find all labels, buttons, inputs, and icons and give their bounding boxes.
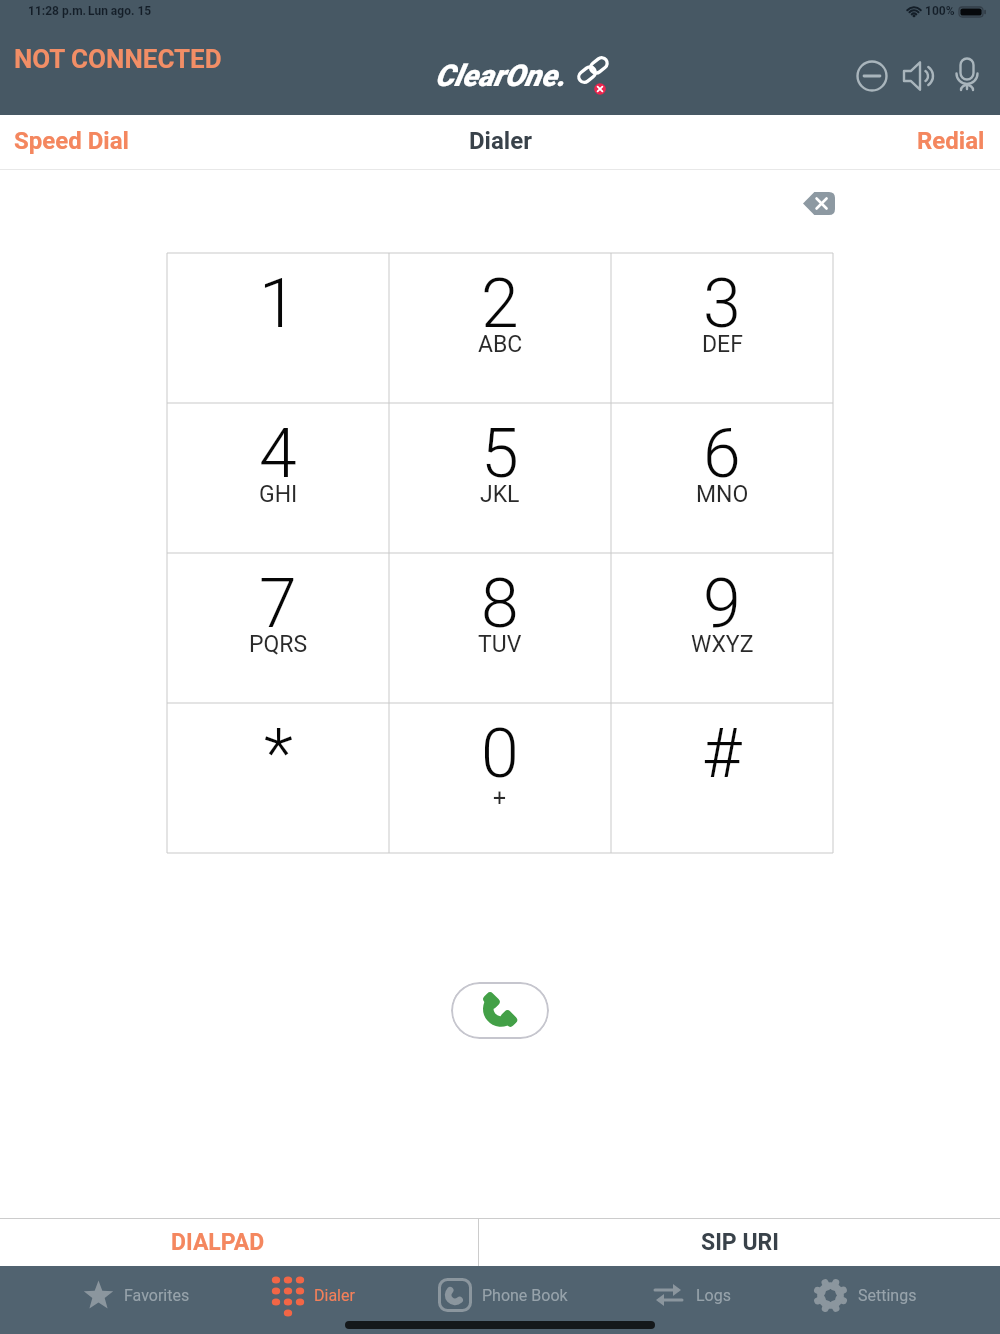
- button[interactable]: 5: [389, 403, 611, 553]
- button[interactable]: [451, 982, 549, 1039]
- staticText: Settings: [858, 1286, 917, 1305]
- button[interactable]: 2: [389, 253, 611, 403]
- button[interactable]: 4: [167, 403, 389, 553]
- button[interactable]: Favorites: [83, 1280, 190, 1310]
- button[interactable]: Phone Book: [438, 1278, 568, 1312]
- button[interactable]: 7: [167, 553, 389, 703]
- staticText: #: [702, 714, 742, 794]
- button[interactable]: Logs: [651, 1281, 731, 1309]
- staticText: ClearOne.: [435, 58, 566, 93]
- staticText: Redial: [917, 127, 985, 155]
- staticText: 100%: [925, 4, 955, 18]
- staticText: TUV: [478, 631, 522, 658]
- staticText: 7: [259, 564, 297, 644]
- button[interactable]: [576, 56, 616, 98]
- staticText: 5: [481, 414, 519, 494]
- button[interactable]: 6: [611, 403, 833, 553]
- staticText: Dialer: [314, 1286, 355, 1305]
- staticText: GHI: [259, 481, 298, 508]
- button[interactable]: Settings: [813, 1278, 917, 1313]
- button[interactable]: Redial: [917, 127, 985, 155]
- button[interactable]: [903, 58, 939, 94]
- staticText: 0: [481, 714, 519, 794]
- staticText: DEF: [702, 331, 743, 358]
- button[interactable]: *: [167, 703, 389, 853]
- button[interactable]: [803, 190, 835, 217]
- staticText: Logs: [696, 1286, 731, 1305]
- staticText: Dialer: [469, 127, 532, 155]
- staticText: 9: [703, 564, 741, 644]
- staticText: 2: [481, 264, 519, 344]
- staticText: Lun ago. 15: [88, 4, 152, 18]
- button[interactable]: [856, 60, 888, 92]
- staticText: *: [264, 714, 293, 794]
- button[interactable]: SIP URI: [479, 1219, 1000, 1266]
- button[interactable]: 9: [611, 553, 833, 703]
- staticText: 8: [481, 564, 519, 644]
- staticText: 6: [703, 414, 741, 494]
- staticText: MNO: [696, 481, 749, 508]
- button[interactable]: DIALPAD: [0, 1219, 478, 1266]
- button[interactable]: Dialer: [272, 1274, 355, 1316]
- button[interactable]: [949, 57, 985, 95]
- button[interactable]: 0: [389, 703, 611, 853]
- staticText: 1: [259, 264, 297, 344]
- button[interactable]: Speed Dial: [14, 127, 129, 155]
- staticText: Phone Book: [482, 1286, 568, 1305]
- staticText: ABC: [478, 331, 523, 358]
- staticText: Favorites: [124, 1286, 190, 1305]
- staticText: 4: [259, 414, 297, 494]
- staticText: 11:28 p.m.: [28, 4, 87, 18]
- staticText: 3: [703, 264, 741, 344]
- staticText: JKL: [480, 481, 520, 508]
- staticText: WXYZ: [691, 631, 754, 658]
- button[interactable]: 1: [167, 253, 389, 403]
- staticText: +: [493, 785, 507, 812]
- staticText: SIP URI: [701, 1229, 779, 1256]
- button[interactable]: NOT CONNECTED: [14, 44, 222, 74]
- staticText: NOT CONNECTED: [14, 44, 222, 74]
- button[interactable]: 3: [611, 253, 833, 403]
- button[interactable]: #: [611, 703, 833, 853]
- staticText: Speed Dial: [14, 127, 129, 155]
- button[interactable]: 8: [389, 553, 611, 703]
- staticText: DIALPAD: [171, 1229, 265, 1256]
- staticText: PQRS: [249, 631, 308, 658]
